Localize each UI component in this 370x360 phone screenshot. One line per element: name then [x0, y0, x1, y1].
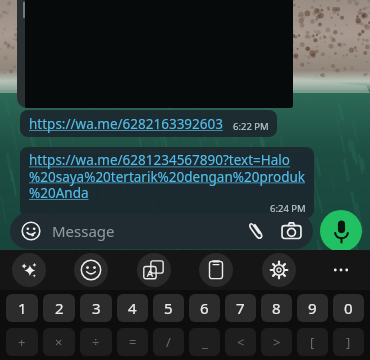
button[interactable]: ]	[333, 328, 364, 356]
staticText: =	[129, 333, 137, 351]
button[interactable]: Voice message	[320, 210, 362, 252]
button[interactable]: Camera	[279, 219, 303, 243]
staticText: <	[237, 333, 245, 351]
button[interactable]: 8	[261, 294, 292, 322]
staticText: 6	[200, 298, 209, 318]
button[interactable]: 2	[43, 294, 75, 322]
staticText: ×	[55, 333, 63, 351]
staticText: https://wa.me/6281234567890?text=Halo %2…	[29, 151, 306, 202]
button[interactable]: =	[117, 328, 148, 356]
button[interactable]: 0	[333, 294, 364, 322]
button[interactable]: [	[297, 328, 328, 356]
button[interactable]: Emoji	[10, 213, 313, 249]
staticText: 9	[308, 298, 317, 318]
button[interactable]: Shared image	[17, 0, 293, 108]
staticText: Message	[52, 221, 115, 241]
button[interactable]: Translate	[137, 253, 171, 287]
button[interactable]: 3	[80, 294, 112, 322]
staticText: 6:22 PM	[233, 120, 269, 133]
button[interactable]: 6	[189, 294, 220, 322]
button[interactable]: Emoji	[20, 220, 42, 242]
staticText: 1	[18, 298, 27, 318]
button[interactable]: Settings	[262, 253, 296, 287]
staticText: ]	[346, 333, 351, 351]
staticText: 8	[272, 298, 281, 318]
staticText: >	[273, 333, 281, 351]
staticText: 6:24 PM	[270, 202, 306, 215]
staticText: ÷	[92, 333, 100, 351]
button[interactable]: https://wa.me/6281234567890?text=Halo %2…	[20, 147, 314, 218]
button[interactable]: Clipboard	[199, 253, 233, 287]
staticText: 3	[92, 298, 101, 318]
button[interactable]: 1	[6, 294, 38, 322]
staticText: [	[310, 333, 315, 351]
button[interactable]: More options	[324, 253, 358, 287]
button[interactable]: _	[189, 328, 220, 356]
staticText: https://wa.me/6282163392603	[29, 115, 223, 133]
staticText: 0	[344, 298, 353, 318]
button[interactable]: ×	[43, 328, 75, 356]
button[interactable]: ÷	[80, 328, 112, 356]
staticText: /	[166, 333, 171, 351]
button[interactable]: 4	[117, 294, 148, 322]
staticText: +	[18, 333, 26, 351]
staticText: 7	[236, 298, 245, 318]
button[interactable]: Magic AI	[12, 253, 46, 287]
staticText: 2	[55, 298, 64, 318]
button[interactable]: Attach	[244, 219, 268, 243]
staticText: 5	[164, 298, 173, 318]
button[interactable]: 9	[297, 294, 328, 322]
button[interactable]: 5	[153, 294, 184, 322]
button[interactable]: https://wa.me/6282163392603	[20, 110, 277, 137]
button[interactable]: +	[6, 328, 38, 356]
button[interactable]: /	[153, 328, 184, 356]
staticText: _	[202, 333, 208, 351]
staticText: 4	[128, 298, 137, 318]
button[interactable]: >	[261, 328, 292, 356]
button[interactable]: 7	[225, 294, 256, 322]
button[interactable]: Emoji	[74, 253, 108, 287]
button[interactable]: <	[225, 328, 256, 356]
